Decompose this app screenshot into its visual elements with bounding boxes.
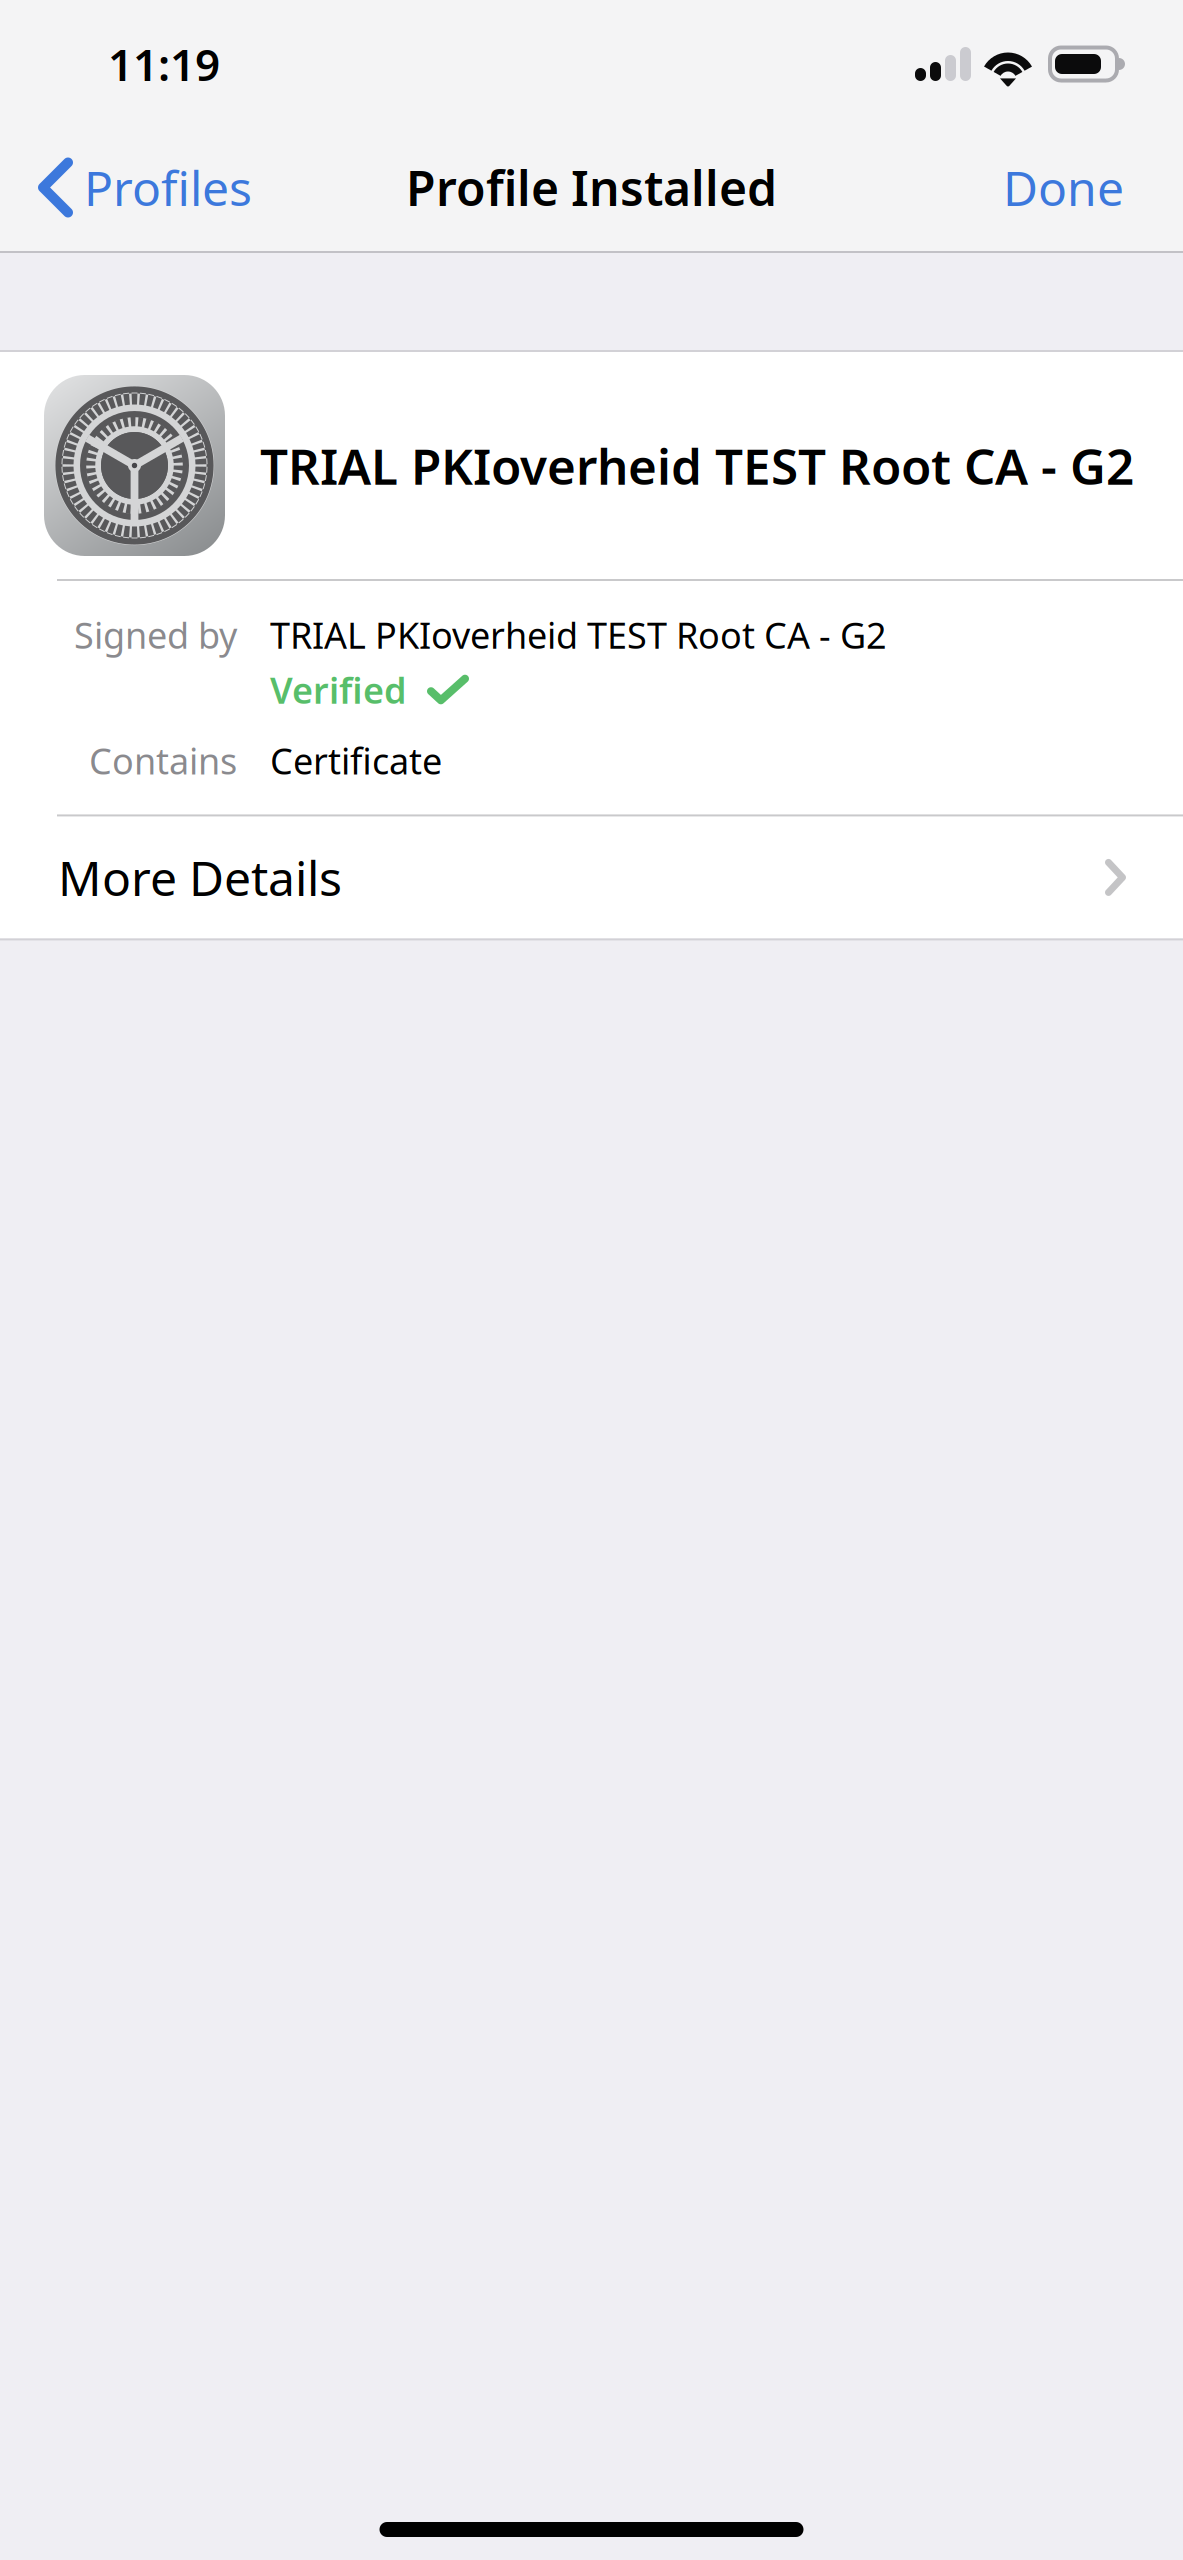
staticText: Certificate bbox=[270, 737, 442, 784]
staticText: More Details bbox=[58, 845, 342, 909]
button[interactable]: More Details bbox=[0, 816, 1183, 938]
button[interactable]: Profiles bbox=[0, 126, 276, 249]
staticText: Verified bbox=[270, 666, 407, 714]
staticText: Done bbox=[1003, 156, 1124, 219]
button[interactable]: Done bbox=[973, 126, 1183, 249]
staticText: Contains bbox=[89, 737, 237, 784]
staticText: TRIAL PKIoverheid TEST Root CA - G2 bbox=[260, 433, 1134, 498]
staticText: Profile Installed bbox=[406, 156, 777, 219]
staticText: TRIAL PKIoverheid TEST Root CA - G2 bbox=[270, 611, 887, 659]
staticText: Profiles bbox=[84, 156, 252, 219]
staticText: 11:19 bbox=[108, 35, 220, 93]
staticText: Signed by bbox=[74, 611, 237, 659]
